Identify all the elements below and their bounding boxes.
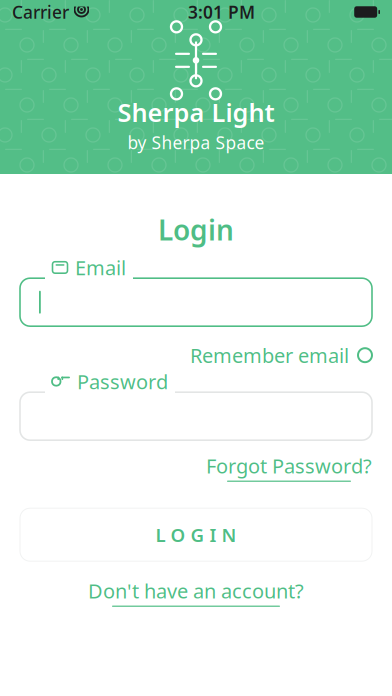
staticText: Sherpa Light <box>117 95 274 129</box>
button[interactable]: Forgot Password? <box>20 452 372 482</box>
staticText: Carrier <box>12 0 69 23</box>
staticText: by Sherpa Space <box>127 131 264 154</box>
button[interactable]: L O G I N <box>20 508 372 561</box>
button[interactable]: Remember email <box>20 340 372 370</box>
staticText: Don't have an account? <box>88 578 304 604</box>
staticText: Login <box>158 211 234 248</box>
staticText: Forgot Password? <box>206 453 372 479</box>
button[interactable]: Don't have an account? <box>20 577 372 607</box>
staticText: 3:01 PM <box>188 0 255 23</box>
staticText: Email <box>75 254 126 281</box>
staticText: Password <box>77 368 168 395</box>
staticText: Remember email <box>190 342 349 368</box>
staticText: L O G I N <box>155 522 236 547</box>
